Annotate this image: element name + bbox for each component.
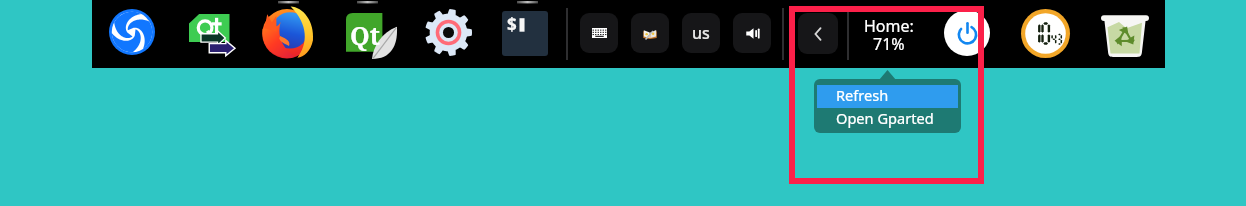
button[interactable]: Trash [1100,12,1150,57]
button[interactable]: Keyboard [580,13,618,53]
button[interactable]: Qt Creator [189,14,235,52]
button[interactable]: Keyboard layout [682,13,720,53]
button[interactable]: Power [944,10,990,56]
button[interactable]: Qt Designer [346,13,398,59]
staticText: $ [507,13,517,36]
staticText: Home: [864,15,914,37]
button[interactable]: Clock [1021,9,1070,58]
button[interactable]: Refresh [817,85,958,108]
button[interactable]: Open Gparted [817,108,958,131]
button[interactable]: Dictionary [631,13,669,53]
button[interactable]: Firefox [262,7,314,59]
staticText: Open Gparted [836,108,934,128]
staticText: 71% [873,33,905,55]
button[interactable]: Volume [733,13,771,53]
staticText: Qt [350,18,380,52]
button[interactable]: Deepin launcher [109,9,155,55]
button[interactable]: Home: [848,14,930,60]
staticText: Refresh [836,85,889,105]
button[interactable]: Back [798,13,838,54]
button[interactable]: Terminal [502,11,548,56]
staticText: us [692,22,710,44]
button[interactable]: Settings [425,9,472,56]
